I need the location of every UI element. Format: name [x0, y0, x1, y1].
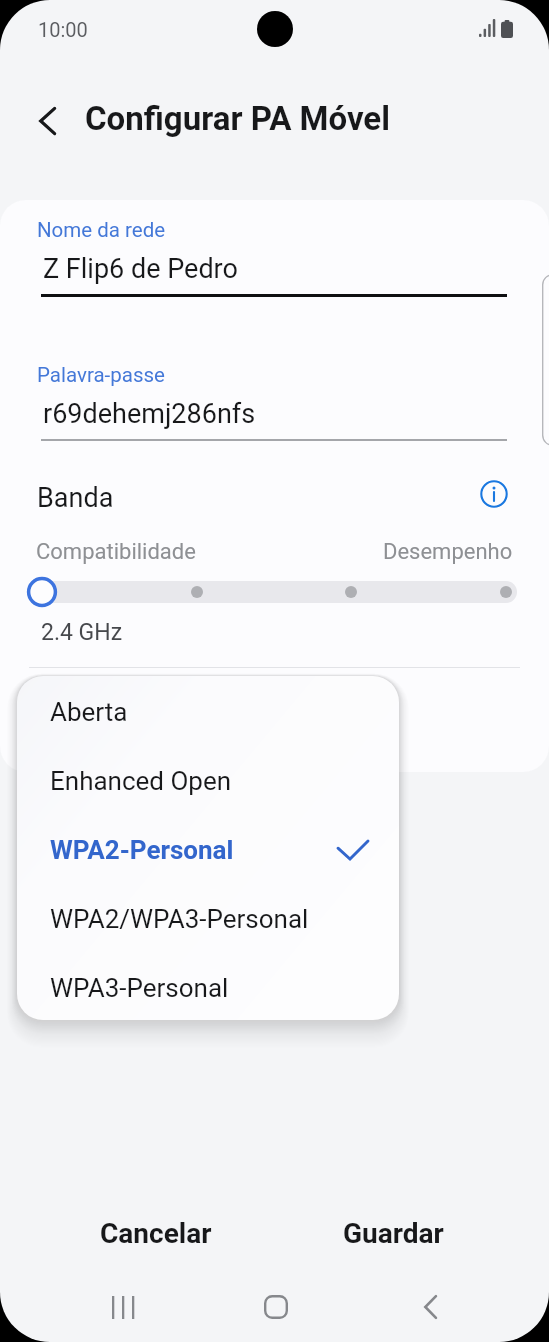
button[interactable]: WPA3-Personal — [17, 953, 399, 1020]
staticText: WPA2/WPA3-Personal — [50, 904, 309, 934]
staticText: Guardar — [343, 1217, 444, 1250]
button[interactable]: Recents — [85, 1275, 160, 1339]
staticText: Cancelar — [100, 1217, 212, 1250]
button[interactable]: WPA2-Personal — [17, 815, 399, 884]
button[interactable]: WPA2/WPA3-Personal — [17, 884, 399, 953]
staticText: Palavra-passe — [37, 363, 165, 387]
button[interactable]: Enhanced Open — [17, 746, 399, 815]
staticText: Desempenho — [383, 539, 513, 565]
button[interactable]: Aberta — [17, 677, 399, 746]
button[interactable]: Home — [238, 1275, 313, 1339]
staticText: Configurar PA Móvel — [85, 99, 390, 138]
staticText: WPA3-Personal — [50, 973, 229, 1003]
button[interactable]: Guardar — [297, 1200, 489, 1266]
staticText: Enhanced Open — [50, 766, 232, 796]
button[interactable]: Information about band — [477, 477, 511, 511]
button[interactable]: Band slider — [0, 574, 549, 610]
staticText: 2.4 GHz — [41, 619, 123, 646]
staticText: Z Flip6 de Pedro — [43, 253, 238, 285]
button[interactable]: Edge panel handle — [542, 274, 549, 446]
button[interactable]: Back — [22, 96, 72, 146]
staticText: Aberta — [50, 697, 128, 727]
button[interactable]: Back — [393, 1275, 468, 1339]
staticText: r69dehemj286nfs — [43, 398, 256, 430]
staticText: WPA2-Personal — [50, 835, 234, 865]
staticText: Compatibilidade — [36, 539, 196, 565]
staticText: Banda — [37, 482, 114, 514]
staticText: 10:00 — [38, 18, 88, 41]
staticText: Nome da rede — [37, 218, 166, 242]
button[interactable]: Cancelar — [60, 1200, 252, 1266]
